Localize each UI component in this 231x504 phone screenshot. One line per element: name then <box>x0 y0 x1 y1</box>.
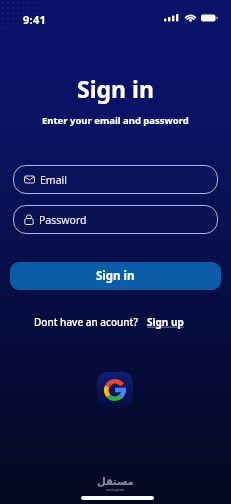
staticText: Sign up <box>147 315 184 329</box>
staticText: mostaql.com <box>106 488 125 492</box>
staticText: Dont have an acount? <box>34 315 138 329</box>
staticText: Enter your email and password <box>42 114 189 127</box>
staticText: مستقل <box>97 476 134 488</box>
staticText: Email <box>40 173 67 187</box>
staticText: Sign in <box>77 73 154 104</box>
staticText: Sign in <box>96 268 135 284</box>
staticText: 9:41 <box>23 12 47 27</box>
staticText: Password <box>39 213 87 227</box>
